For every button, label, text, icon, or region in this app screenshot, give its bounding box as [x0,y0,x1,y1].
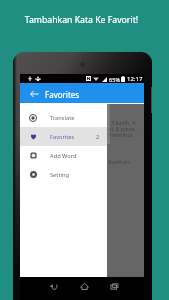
staticText: Setting [50,171,69,179]
staticText: mencinta. - [108,131,138,139]
staticText: ol. 6 pacar. [108,125,136,133]
staticText: 65% [109,76,121,84]
other: Recent apps [110,282,119,291]
other: Home [80,282,89,291]
button[interactable]: Add Word [20,146,107,165]
staticText: kasihan. [109,158,131,166]
staticText: 2 [96,133,100,141]
staticText: Translate [50,114,75,122]
other: Back [49,282,58,291]
button[interactable]: Translate [20,108,107,127]
staticText: Favorites [50,133,75,141]
button[interactable]: Setting [20,165,107,184]
staticText: Tambahkan Kata Ke Favorit! [0,14,166,26]
staticText: 12:17 [127,75,143,83]
staticText: : 3 kasih. 4 [108,119,136,127]
staticText: Add Word [50,152,77,160]
button[interactable]: Back [20,83,144,103]
button[interactable]: Favorites [20,127,107,146]
staticText: Favorites [45,89,80,100]
other: Back [30,90,39,98]
